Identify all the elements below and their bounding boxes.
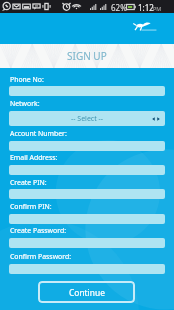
staticText: 1:12 [138, 2, 154, 13]
staticText: -- Select -- [71, 114, 104, 124]
staticText: Phone No: [10, 75, 44, 84]
staticText: 62% [111, 2, 127, 13]
staticText: Create PIN: [10, 178, 47, 187]
staticText: Network: [10, 99, 40, 108]
staticText: Continue [69, 287, 105, 298]
staticText: Create Password: [10, 226, 66, 235]
staticText: Email Address: [10, 153, 58, 162]
button[interactable]: Text field [9, 165, 165, 175]
staticText: Account Number: [10, 129, 67, 138]
button[interactable]: Text field [9, 238, 165, 248]
button[interactable]: Network selector [9, 111, 165, 126]
button[interactable]: Continue [38, 281, 135, 303]
button[interactable]: Text field [9, 86, 165, 96]
staticText: PM [153, 5, 162, 12]
staticText: Confirm Password: [10, 252, 72, 261]
staticText: Confirm PIN: [10, 202, 52, 211]
button[interactable]: Company logo [135, 19, 164, 34]
button[interactable]: Text field [9, 189, 165, 199]
button[interactable]: Text field [9, 214, 165, 224]
button[interactable]: Text field [9, 264, 165, 274]
staticText: SIGN UP [67, 49, 107, 63]
button[interactable]: Text field [9, 141, 165, 151]
